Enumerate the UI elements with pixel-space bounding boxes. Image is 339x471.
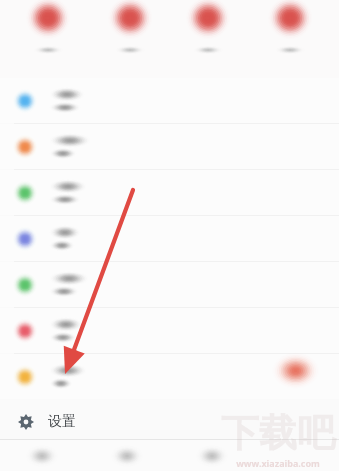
button[interactable]: Tab 2 <box>84 440 169 471</box>
button[interactable] <box>0 354 339 399</box>
button[interactable] <box>0 216 339 261</box>
button[interactable]: 设置 <box>0 405 339 439</box>
staticText: 设置 <box>48 413 76 431</box>
other: 设置 <box>18 414 34 430</box>
staticText: 下载吧 <box>221 409 335 457</box>
button[interactable] <box>0 124 339 169</box>
button[interactable]: Tab 3 <box>169 440 254 471</box>
staticText: www.xiazaiba.com <box>236 457 320 469</box>
button[interactable] <box>0 262 339 307</box>
button[interactable] <box>0 170 339 215</box>
button[interactable]: Tab 1 <box>0 440 84 471</box>
button[interactable] <box>0 78 339 123</box>
button[interactable] <box>0 308 339 353</box>
button[interactable]: Tab 4 <box>254 440 339 471</box>
